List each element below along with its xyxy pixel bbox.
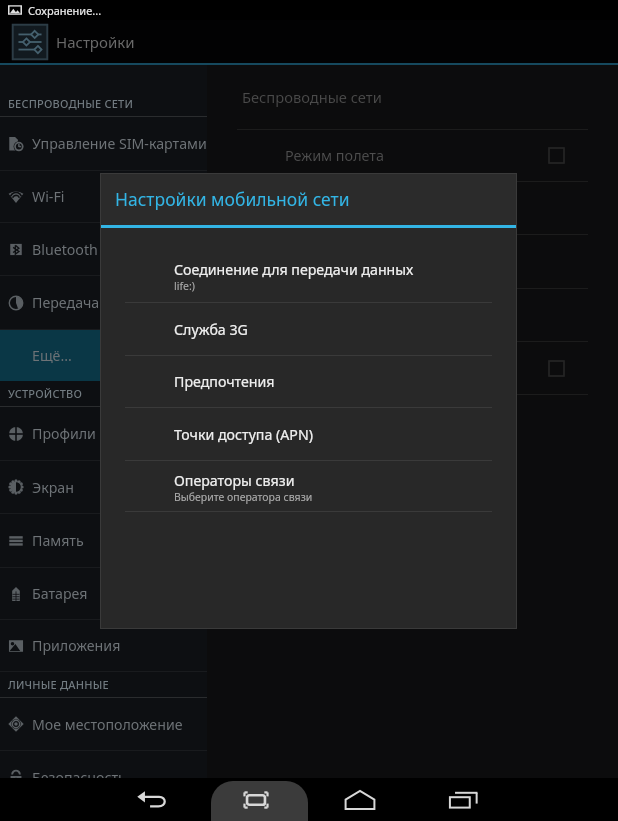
staticText: Настройки	[56, 32, 135, 52]
staticText: Предпочтения	[174, 372, 275, 391]
staticText: УСТРОЙСТВО	[8, 386, 83, 401]
staticText: Управление SIM-картами	[32, 134, 207, 153]
button[interactable]: Bluetooth	[0, 223, 207, 275]
button[interactable]: Screenshot	[204, 778, 308, 821]
staticText: Настройки мобильной сети	[115, 187, 350, 211]
staticText: БЕСПРОВОДНЫЕ СЕТИ	[8, 96, 134, 111]
button[interactable]: Операторы связи	[100, 461, 517, 512]
staticText: Режим полета	[285, 146, 385, 166]
button[interactable]	[285, 182, 564, 234]
staticText: Соединение для передачи данных	[174, 260, 414, 279]
button[interactable]: Управление SIM-картами	[0, 117, 207, 170]
button[interactable]: Ещё...	[0, 330, 207, 381]
staticText: Wi-Fi	[32, 187, 65, 206]
button[interactable]: Безопасность	[0, 751, 207, 778]
button[interactable]: Экран	[0, 461, 207, 513]
staticText: ЛИЧНЫЕ ДАННЫЕ	[8, 677, 109, 692]
staticText: Операторы связи	[174, 471, 295, 490]
button[interactable]: Точки доступа (APN)	[100, 408, 517, 461]
staticText: Выберите оператора связи	[174, 490, 313, 504]
button[interactable]: Предпочтения	[100, 356, 517, 408]
staticText: Bluetooth	[32, 240, 98, 259]
button[interactable]: Служба 3G	[100, 303, 517, 356]
button[interactable]: Память	[0, 514, 207, 567]
staticText: Служба 3G	[174, 320, 248, 339]
button[interactable]: Батарея	[0, 568, 207, 619]
button[interactable]: Режим полета	[285, 130, 564, 181]
button[interactable]: Мое местоположение	[0, 698, 207, 750]
staticText: Экран	[32, 478, 74, 497]
staticText: Сохранение...	[28, 3, 102, 18]
staticText: Точки доступа (APN)	[174, 425, 313, 444]
button[interactable]: Приложения	[0, 620, 207, 671]
button[interactable]	[285, 235, 564, 288]
button[interactable]: Wi-Fi	[0, 171, 207, 222]
staticText: Передача данных	[32, 293, 155, 312]
button[interactable]	[285, 289, 564, 341]
staticText: Батарея	[32, 584, 88, 603]
staticText: Профили	[32, 424, 96, 443]
staticText: Безопасность	[32, 768, 126, 778]
staticText: Память	[32, 531, 84, 550]
staticText: Беспроводные сети	[242, 87, 382, 107]
button[interactable]: Home	[308, 778, 412, 821]
staticText: Мое местоположение	[32, 715, 183, 734]
button[interactable]: Recents	[412, 778, 516, 821]
button[interactable]: Соединение для передачи данных	[100, 249, 517, 303]
button[interactable]: Передача данных	[0, 276, 207, 329]
button[interactable]: Профили	[0, 407, 207, 460]
staticText: Приложения	[32, 636, 121, 655]
staticText: Ещё...	[32, 346, 72, 365]
button[interactable]	[285, 342, 564, 394]
staticText: life:)	[174, 279, 195, 293]
button[interactable]: Back	[100, 778, 204, 821]
